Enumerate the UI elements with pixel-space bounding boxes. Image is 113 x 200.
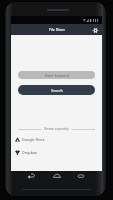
- button[interactable]: Search: [18, 85, 95, 95]
- button[interactable]: Recent apps: [75, 171, 86, 180]
- staticText: Dropbox: [22, 150, 38, 155]
- button[interactable]: Enter keyword: [18, 71, 95, 79]
- button[interactable]: Dropbox: [15, 146, 92, 159]
- button[interactable]: Back: [25, 171, 36, 180]
- button[interactable]: Google Drive: [15, 133, 92, 146]
- staticText: Enter keyword: [45, 73, 69, 78]
- button[interactable]: Settings: [91, 26, 100, 35]
- staticText: File Diver: [49, 27, 65, 32]
- button[interactable]: Home: [51, 171, 62, 180]
- staticText: Browse separately: [44, 127, 69, 131]
- staticText: Google Drive: [22, 137, 45, 142]
- staticText: Search: [51, 88, 63, 93]
